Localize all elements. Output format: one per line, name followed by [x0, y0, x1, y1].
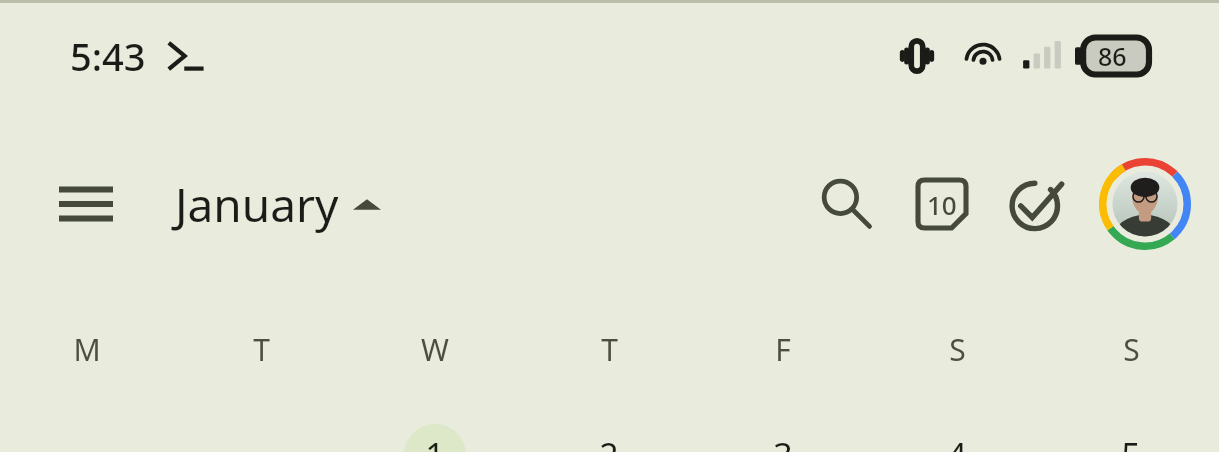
staticText: F — [775, 329, 791, 370]
button[interactable]: 3 — [723, 420, 843, 452]
staticText: 1 — [425, 432, 445, 452]
staticText: 5:43 — [70, 30, 146, 82]
button[interactable]: Account profile — [1093, 152, 1197, 256]
staticText: 10 — [927, 187, 957, 222]
staticText: 3 — [773, 432, 793, 452]
staticText: W — [421, 329, 449, 370]
button[interactable]: 4 — [897, 420, 1017, 452]
button[interactable]: Jump to date — [899, 161, 985, 247]
button[interactable]: 1 — [375, 420, 495, 452]
staticText: January — [175, 173, 339, 236]
staticText: S — [1123, 329, 1140, 370]
button[interactable]: Tasks — [995, 161, 1081, 247]
button[interactable]: 2 — [549, 420, 669, 452]
staticText: 4 — [947, 432, 967, 452]
button[interactable]: January — [165, 167, 391, 242]
button[interactable]: 5 — [1071, 420, 1191, 452]
staticText: 2 — [599, 432, 619, 452]
staticText: 5 — [1121, 432, 1141, 452]
staticText: T — [253, 329, 270, 370]
button[interactable]: Search — [803, 161, 889, 247]
staticText: 86 — [1098, 39, 1127, 73]
button[interactable]: Open navigation menu — [48, 166, 124, 242]
staticText: M — [73, 329, 101, 370]
staticText: S — [949, 329, 966, 370]
staticText: T — [601, 329, 618, 370]
